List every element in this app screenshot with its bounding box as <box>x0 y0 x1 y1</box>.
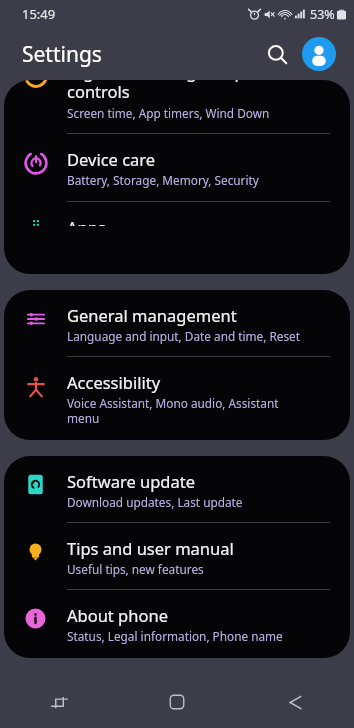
staticText: Battery, Storage, Memory, Security <box>67 172 259 188</box>
staticText: Tips and user manual <box>67 537 234 559</box>
button[interactable]: Recents <box>0 676 118 728</box>
staticText: Screen time, App timers, Wind Down <box>67 105 270 121</box>
staticText: Device care <box>67 148 156 170</box>
staticText: Language and input, Date and time, Reset <box>67 328 301 344</box>
button[interactable]: Account <box>302 37 336 71</box>
button[interactable]: Software update <box>4 456 350 522</box>
staticText: 15:49 <box>22 5 56 23</box>
button[interactable]: Device care <box>4 134 350 201</box>
button[interactable]: Search <box>258 35 296 73</box>
staticText: Voice Assistant, Mono audio, Assistant m… <box>67 395 279 426</box>
staticText: Apps <box>67 216 106 226</box>
staticText: 53% <box>310 6 335 23</box>
button[interactable]: Accessibility <box>4 357 350 440</box>
button[interactable]: Home <box>118 676 236 728</box>
button[interactable]: Digital wellbeing and parental controls <box>4 80 350 133</box>
staticText: Useful tips, new features <box>67 561 204 577</box>
staticText: Download updates, Last update <box>67 494 243 510</box>
staticText: Digital wellbeing and parental controls <box>67 80 300 103</box>
staticText: Status, Legal information, Phone name <box>67 628 283 644</box>
staticText: General management <box>67 304 237 326</box>
staticText: Accessibility <box>67 371 161 393</box>
button[interactable]: Apps <box>4 202 350 240</box>
staticText: Software update <box>67 470 195 492</box>
button[interactable]: Tips and user manual <box>4 523 350 589</box>
staticText: Settings <box>22 40 102 69</box>
button[interactable]: General management <box>4 290 350 356</box>
button[interactable]: About phone <box>4 590 350 658</box>
staticText: About phone <box>67 604 168 626</box>
button[interactable]: Back <box>236 676 354 728</box>
